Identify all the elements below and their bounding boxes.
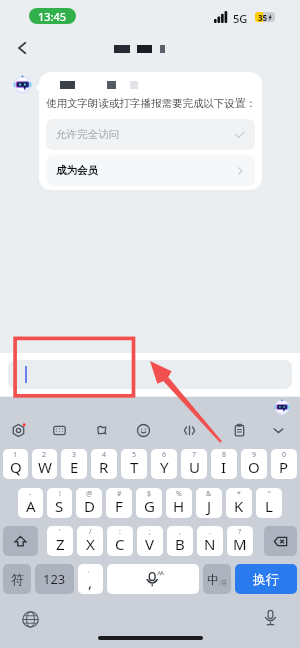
staticText: / (89, 527, 92, 537)
staticText: N (204, 534, 216, 554)
button[interactable]: 符 (3, 564, 31, 594)
button[interactable]: 允许完全访问 (46, 119, 255, 150)
staticText: ? (238, 527, 242, 537)
staticText: X (86, 534, 95, 554)
staticText: 成为会员 (56, 164, 98, 177)
button[interactable]: Settings (7, 419, 29, 441)
staticText: V (145, 534, 155, 554)
staticText: E (70, 457, 79, 477)
staticText: @ (86, 489, 93, 499)
button[interactable]: 9 (241, 449, 267, 479)
button[interactable]: Stickers (90, 419, 112, 441)
staticText: M (233, 534, 247, 554)
staticText: 中 (207, 572, 219, 587)
staticText: G (144, 496, 155, 516)
staticText: : (119, 527, 121, 537)
staticText: 8 (222, 450, 227, 460)
staticText: Z (56, 534, 65, 554)
button[interactable]: * (226, 488, 252, 518)
button[interactable]: $ (136, 488, 162, 518)
button[interactable]: @ (76, 488, 102, 518)
staticText: 6 (162, 450, 167, 460)
staticText: U (189, 457, 200, 477)
staticText: # (117, 489, 122, 499)
staticText: 3 (72, 450, 77, 460)
button[interactable]: - (18, 488, 43, 518)
button[interactable]: 6 (151, 449, 177, 479)
button[interactable]: : (107, 526, 133, 556)
button[interactable]: Emoji (132, 419, 154, 441)
button[interactable]: ! (47, 488, 72, 518)
staticText: R (99, 457, 109, 477)
staticText: 5G (233, 11, 248, 26)
staticText: D (84, 496, 95, 516)
staticText: 35 (258, 12, 268, 22)
staticText: P (279, 457, 289, 477)
staticText: 符 (11, 571, 24, 587)
button[interactable]: ; (137, 526, 163, 556)
button[interactable]: 7 (181, 449, 207, 479)
button[interactable]: Keyboard (48, 419, 70, 441)
staticText: % (176, 489, 182, 499)
staticText: 使用文字朗读或打字播报需要完成以下设置： (46, 97, 256, 110)
staticText: 123 (43, 570, 66, 588)
button[interactable]: Language (19, 608, 41, 630)
staticText: L (265, 496, 273, 516)
staticText: H (173, 496, 185, 516)
button[interactable]: " (256, 488, 282, 518)
staticText: , (88, 572, 93, 592)
staticText: & (206, 489, 212, 499)
button[interactable]: Chinese English toggle (203, 564, 231, 594)
button[interactable]: 1 (3, 449, 28, 479)
button[interactable]: 5 (121, 449, 147, 479)
staticText: 2 (42, 450, 47, 460)
button[interactable]: 4 (91, 449, 117, 479)
button[interactable]: Space (107, 564, 199, 594)
button[interactable]: 、 (78, 564, 103, 594)
button[interactable]: 0 (271, 449, 297, 479)
staticText: 5 (132, 450, 137, 460)
button[interactable]: Shift (3, 526, 38, 556)
staticText: - (29, 489, 32, 499)
staticText: , (179, 527, 181, 537)
staticText: . (209, 527, 211, 537)
staticText: 13:45 (38, 9, 67, 24)
button[interactable]: . (197, 526, 223, 556)
button[interactable]: 8 (211, 449, 237, 479)
button[interactable]: 成为会员 (46, 155, 255, 186)
staticText: ; (149, 527, 151, 537)
staticText: 4 (102, 450, 107, 460)
button[interactable]: / (77, 526, 103, 556)
staticText: 1 (13, 450, 18, 460)
button[interactable]: Assistant (274, 399, 290, 415)
staticText: 、 (87, 565, 94, 574)
button[interactable]: 123 (35, 564, 74, 594)
staticText: ' (59, 527, 61, 537)
button[interactable]: & (196, 488, 222, 518)
staticText: $ (147, 489, 152, 499)
button[interactable]: 3 (61, 449, 87, 479)
button[interactable]: Collapse (267, 419, 289, 441)
staticText: 7 (192, 450, 197, 460)
button[interactable]: 2 (32, 449, 57, 479)
staticText: F (115, 496, 123, 516)
staticText: 换行 (253, 571, 279, 587)
button[interactable]: Text tools (178, 419, 200, 441)
button[interactable]: Clipboard (228, 419, 250, 441)
button[interactable]: Back (9, 35, 35, 61)
staticText: 允许完全访问 (56, 128, 119, 141)
staticText: /英 (219, 579, 228, 587)
button[interactable]: Backspace (264, 526, 297, 556)
button[interactable]: , (167, 526, 193, 556)
button[interactable]: ? (227, 526, 253, 556)
staticText: O (248, 457, 260, 477)
staticText: Y (160, 457, 169, 477)
button[interactable]: 换行 (235, 564, 297, 594)
staticText: C (115, 534, 125, 554)
button[interactable] (8, 360, 292, 389)
staticText: B (175, 534, 185, 554)
button[interactable]: # (106, 488, 132, 518)
button[interactable]: % (166, 488, 192, 518)
button[interactable]: Microphone (259, 606, 281, 628)
button[interactable]: ' (47, 526, 73, 556)
